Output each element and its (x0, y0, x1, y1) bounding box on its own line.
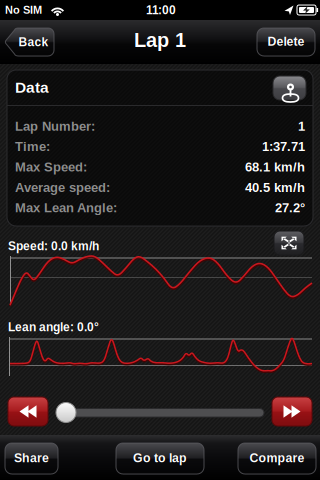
staticText: Lap Number: (15, 119, 95, 133)
button[interactable]: Compare (238, 443, 316, 474)
staticText: Delete (267, 35, 304, 48)
button[interactable]: Expand graph (274, 231, 304, 255)
staticText: Speed: 0.0 km/h (8, 239, 99, 253)
button[interactable]: Show lap on map (273, 76, 306, 100)
staticText: Lean angle: 0.0° (8, 320, 99, 334)
staticText: Share (14, 451, 49, 465)
button[interactable]: Share (5, 443, 58, 474)
staticText: No SIM (5, 4, 42, 16)
button[interactable]: Fast forward (272, 397, 312, 426)
staticText: Compare (249, 451, 304, 465)
staticText: Time: (15, 139, 50, 154)
staticText: Max Lean Angle: (15, 201, 117, 215)
staticText: 27.2° (275, 201, 305, 215)
staticText: 11:00 (146, 3, 176, 17)
staticText: 1:37.71 (262, 139, 305, 154)
staticText: Go to lap (133, 451, 187, 465)
button[interactable]: Back (5, 28, 54, 56)
staticText: 40.5 km/h (245, 180, 305, 194)
staticText: Lap 1 (134, 29, 186, 51)
staticText: 68.1 km/h (245, 160, 305, 174)
button[interactable]: Rewind (8, 397, 48, 426)
staticText: Back (18, 35, 48, 49)
staticText: Max Speed: (15, 160, 87, 174)
staticText: Average speed: (15, 180, 110, 194)
staticText: Data (15, 79, 49, 96)
button[interactable]: Go to lap (116, 443, 204, 474)
staticText: 1 (298, 119, 305, 133)
button[interactable]: Delete (257, 28, 315, 56)
